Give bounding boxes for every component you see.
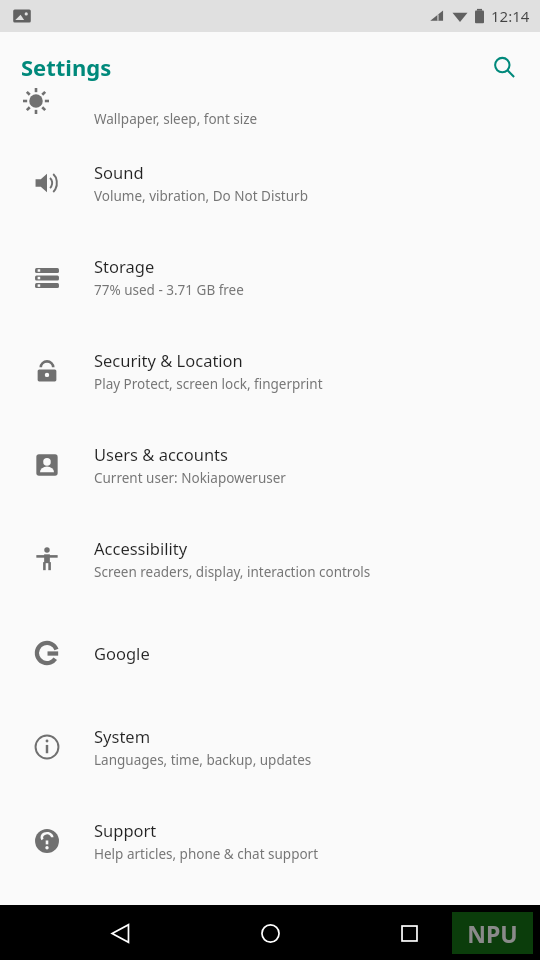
staticText: Screen readers, display, interaction con… (94, 563, 371, 581)
button[interactable]: Sound (0, 136, 540, 230)
staticText: Help articles, phone & chat support (94, 845, 319, 863)
staticText: Security & Location (94, 349, 243, 371)
button[interactable]: Support (0, 794, 540, 888)
staticText: Accessibility (94, 537, 188, 559)
staticText: NPU (467, 918, 518, 949)
button[interactable]: Google (0, 606, 540, 700)
button[interactable]: Users & accounts (0, 418, 540, 512)
staticText: Wallpaper, sleep, font size (94, 110, 258, 128)
staticText: Sound (94, 161, 144, 183)
staticText: System (94, 725, 151, 747)
button[interactable]: Accessibility (0, 512, 540, 606)
button[interactable]: Wallpaper, sleep, font size (0, 102, 540, 136)
button[interactable]: Storage (0, 230, 540, 324)
button[interactable]: Recent apps (385, 909, 433, 957)
staticText: Languages, time, backup, updates (94, 751, 312, 769)
staticText: 12:14 (491, 6, 530, 26)
button[interactable]: Back (96, 909, 144, 957)
staticText: Current user: Nokiapoweruser (94, 469, 286, 487)
staticText: Settings (21, 52, 112, 82)
staticText: Play Protect, screen lock, fingerprint (94, 375, 323, 393)
staticText: Volume, vibration, Do Not Disturb (94, 187, 308, 205)
button[interactable]: Search settings (480, 43, 528, 91)
staticText: 77% used - 3.71 GB free (94, 281, 244, 299)
staticText: Users & accounts (94, 443, 228, 465)
button[interactable]: System (0, 700, 540, 794)
staticText: Google (94, 642, 150, 664)
staticText: Storage (94, 255, 155, 277)
staticText: Support (94, 819, 157, 841)
button[interactable]: Security & Location (0, 324, 540, 418)
button[interactable]: Home (246, 909, 294, 957)
